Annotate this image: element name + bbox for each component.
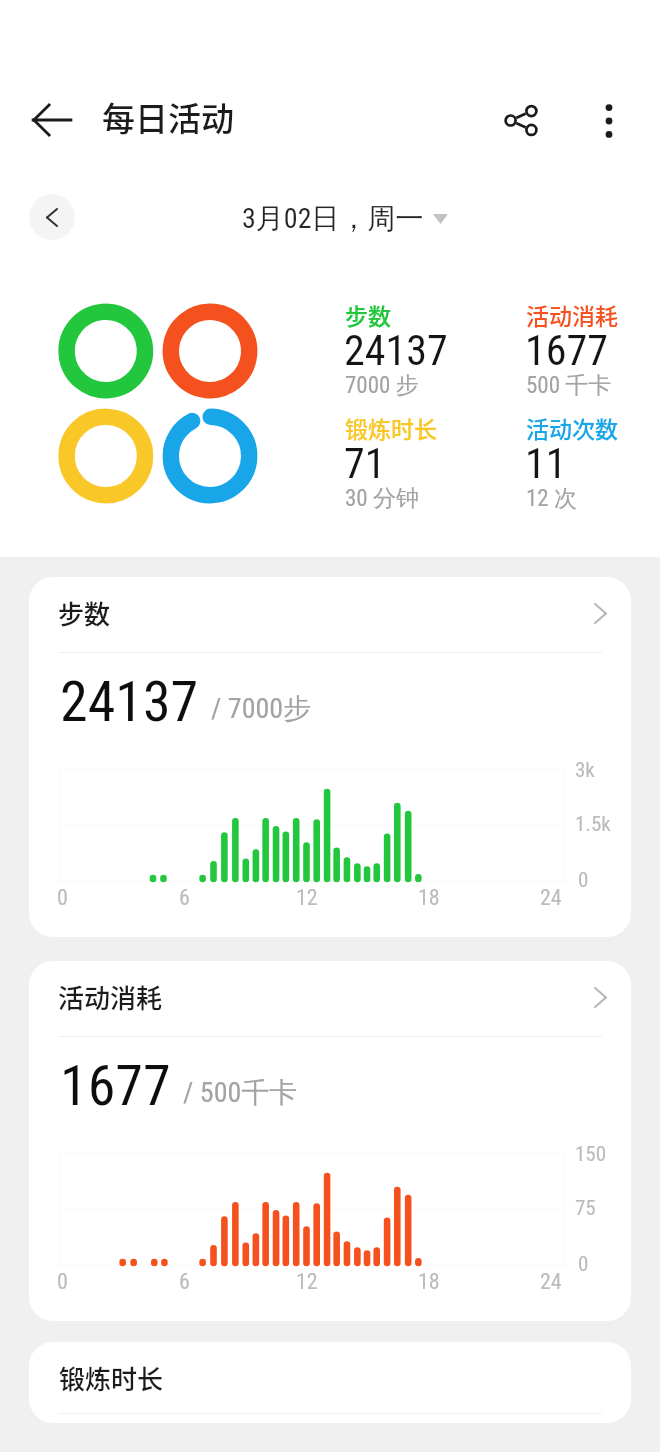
staticText: 6: [179, 1269, 190, 1295]
button[interactable]: 活动消耗: [526, 301, 660, 401]
button[interactable]: 3月02日，周一: [242, 201, 448, 236]
staticText: 0: [578, 868, 589, 893]
staticText: 1677: [525, 326, 608, 375]
staticText: 18: [418, 885, 440, 911]
button[interactable]: Share: [490, 90, 551, 151]
button[interactable]: 锻炼时长: [29, 1342, 631, 1423]
staticText: 0: [57, 885, 68, 911]
staticText: 活动消耗: [58, 978, 163, 1016]
staticText: 活动消耗: [526, 298, 618, 331]
staticText: 18: [418, 1269, 440, 1295]
staticText: 11: [525, 439, 567, 488]
staticText: 500 千卡: [526, 371, 612, 400]
staticText: 1677: [60, 1053, 171, 1119]
button[interactable]: Activity rings: [46, 292, 270, 516]
button[interactable]: 步数: [29, 577, 631, 937]
staticText: 24: [540, 885, 562, 911]
staticText: / 500千卡: [183, 1075, 298, 1110]
staticText: 75: [575, 1196, 596, 1221]
staticText: 3月02日，周一: [242, 201, 424, 236]
staticText: 锻炼时长: [345, 411, 437, 444]
staticText: 24: [540, 1269, 562, 1295]
staticText: 30 分钟: [345, 484, 419, 513]
button[interactable]: Previous day: [29, 194, 75, 240]
staticText: 24137: [60, 669, 199, 735]
staticText: 步数: [58, 594, 111, 632]
staticText: 150: [575, 1142, 607, 1167]
staticText: 每日活动: [102, 93, 234, 141]
button[interactable]: 活动次数: [526, 414, 660, 514]
staticText: 0: [578, 1252, 589, 1277]
staticText: 12: [296, 1269, 318, 1295]
button[interactable]: Back: [18, 86, 86, 154]
staticText: / 7000步: [211, 691, 312, 726]
staticText: 步数: [345, 298, 391, 331]
staticText: 活动次数: [526, 411, 618, 444]
staticText: 24137: [344, 326, 448, 375]
staticText: 1.5k: [575, 812, 611, 837]
staticText: 7000 步: [345, 371, 419, 400]
button[interactable]: 锻炼时长: [345, 414, 520, 514]
button[interactable]: 活动消耗: [29, 961, 631, 1321]
staticText: 12: [296, 885, 318, 911]
button[interactable]: More options: [578, 90, 639, 151]
staticText: 锻炼时长: [59, 1359, 164, 1397]
staticText: 6: [179, 885, 190, 911]
staticText: 71: [344, 439, 386, 488]
staticText: 3k: [575, 758, 595, 783]
staticText: 12 次: [526, 484, 577, 513]
staticText: 0: [57, 1269, 68, 1295]
button[interactable]: 步数: [345, 301, 520, 401]
